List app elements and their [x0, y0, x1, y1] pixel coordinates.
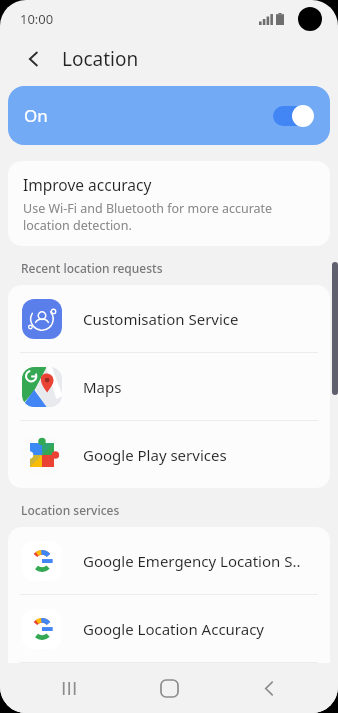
button[interactable]: Customisation Service [8, 285, 330, 352]
staticText: Recent location requests [21, 260, 163, 276]
button[interactable]: Google Location Accuracy [8, 595, 330, 662]
staticText: Maps [83, 377, 122, 397]
staticText: Customisation Service [83, 309, 239, 329]
button[interactable]: Back [16, 41, 52, 77]
staticText: Google Play services [83, 445, 227, 465]
button[interactable]: Back [239, 666, 299, 710]
button[interactable]: On [8, 86, 330, 145]
button[interactable]: Improve accuracy [8, 161, 330, 246]
staticText: Location [62, 46, 139, 72]
button[interactable]: Google Play services [8, 421, 330, 488]
staticText: Google Location Accuracy [83, 619, 265, 639]
staticText: On [24, 104, 48, 127]
button[interactable] [8, 663, 330, 713]
button[interactable]: Google Emergency Location S.. [8, 527, 330, 594]
staticText: Location services [21, 502, 120, 518]
staticText: Use Wi-Fi and Bluetooth for more accurat… [23, 200, 315, 233]
staticText: 10:00 [20, 10, 54, 28]
staticText: Google Emergency Location S.. [83, 551, 301, 571]
staticText: Improve accuracy [23, 174, 152, 195]
button[interactable]: Home [139, 666, 199, 710]
button[interactable]: Maps [8, 353, 330, 420]
button[interactable]: Recents [40, 666, 100, 710]
